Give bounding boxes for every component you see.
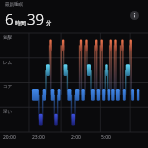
staticText: 分 xyxy=(46,20,52,27)
staticText: 5:00 xyxy=(101,134,111,141)
button[interactable]: 詳細情報 xyxy=(127,8,142,23)
staticText: 23:00 xyxy=(32,134,45,141)
staticText: 39 xyxy=(27,9,45,29)
staticText: コア xyxy=(3,84,13,90)
staticText: レム xyxy=(3,60,13,66)
staticText: 覚醒 xyxy=(3,35,12,41)
staticText: 深い xyxy=(3,109,13,115)
staticText: 6 xyxy=(5,9,14,29)
staticText: 20:00 xyxy=(3,134,16,141)
staticText: 時間 xyxy=(15,20,26,27)
staticText: 2:00 xyxy=(71,134,81,141)
staticText: 最新睡眠 xyxy=(5,2,23,8)
